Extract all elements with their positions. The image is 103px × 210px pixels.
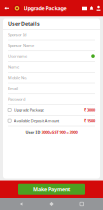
- staticText: Password: [8, 96, 25, 102]
- staticText: User ID: [25, 130, 41, 135]
- staticText: Sponsor Id: [8, 32, 26, 37]
- staticText: Email: [8, 86, 18, 91]
- button[interactable]: Wallet: [81, 0, 88, 16]
- staticText: Available Deposit Amount: [14, 118, 59, 123]
- staticText: Upgrade Package: [23, 5, 66, 12]
- button[interactable]: Home: [42, 198, 60, 210]
- staticText: Make Payment: [33, 186, 70, 193]
- button[interactable]: Make Payment: [18, 184, 85, 195]
- button[interactable]: Back: [0, 0, 13, 16]
- button[interactable]: Recents: [73, 198, 91, 210]
- staticText: Sponsor Name: [8, 43, 34, 48]
- button[interactable]: Upgrade Package: [3, 105, 100, 116]
- button[interactable]: Back: [12, 198, 30, 210]
- staticText: 3000+GST 900 = 3900: [41, 130, 77, 135]
- button[interactable]: Profile: [95, 0, 102, 16]
- staticText: User Details: [8, 20, 40, 27]
- staticText: ₹ 1500: [84, 118, 95, 123]
- staticText: Username: [8, 53, 27, 59]
- staticText: Mobile No.: [8, 75, 27, 80]
- button[interactable]: Notifications: [88, 0, 95, 16]
- staticText: Upgrade Package: [14, 107, 44, 112]
- staticText: Name: [8, 64, 19, 69]
- button[interactable]: Available Deposit Amount: [3, 115, 100, 126]
- staticText: ₹ 3000: [84, 107, 95, 112]
